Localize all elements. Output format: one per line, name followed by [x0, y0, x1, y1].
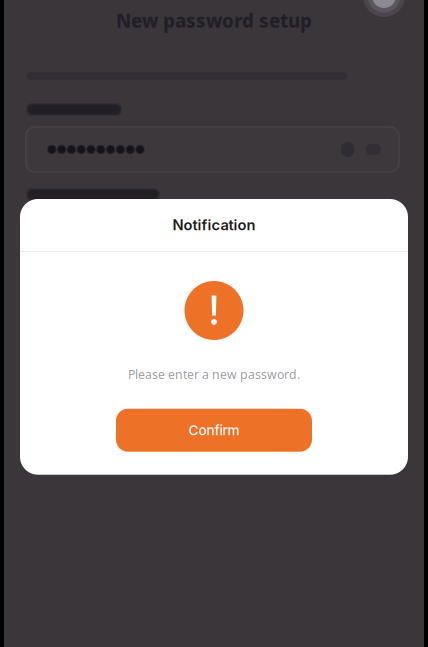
staticText: Notification	[172, 216, 255, 234]
staticText: Please enter a new password.	[128, 366, 300, 383]
button[interactable]: Confirm	[116, 409, 312, 452]
staticText: Confirm	[188, 422, 239, 438]
staticText: New password setup	[116, 8, 312, 33]
